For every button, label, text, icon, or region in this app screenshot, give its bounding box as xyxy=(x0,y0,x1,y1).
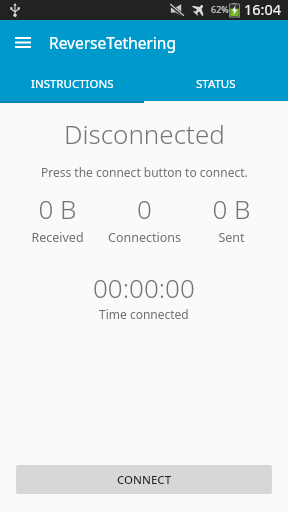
button[interactable]: CONNECT xyxy=(16,465,272,494)
staticText: 0 B xyxy=(212,191,251,226)
staticText: Sent xyxy=(218,229,245,246)
staticText: Press the connect button to connect. xyxy=(41,164,248,180)
staticText: Disconnected xyxy=(64,116,225,151)
staticText: INSTRUCTIONS xyxy=(31,76,114,92)
other: USB connected xyxy=(10,3,20,17)
staticText: ReverseTethering xyxy=(49,32,176,53)
staticText: Received xyxy=(31,229,84,246)
staticText: 16:04 xyxy=(244,0,282,19)
staticText: 0 B xyxy=(38,191,77,226)
staticText: 62% xyxy=(211,3,229,15)
staticText: 0 xyxy=(137,191,152,226)
staticText: Connections xyxy=(108,229,181,246)
button[interactable]: INSTRUCTIONS xyxy=(0,65,144,101)
other: Sound off xyxy=(170,4,184,16)
button[interactable]: STATUS xyxy=(144,65,288,101)
staticText: STATUS xyxy=(196,76,236,92)
button[interactable]: Open navigation drawer xyxy=(0,20,45,65)
other: Airplane mode xyxy=(192,4,206,15)
staticText: CONNECT xyxy=(117,472,172,488)
other: Battery charging 62 percent xyxy=(229,3,240,17)
staticText: 00:00:00 xyxy=(93,270,195,305)
staticText: Time connected xyxy=(99,306,189,322)
